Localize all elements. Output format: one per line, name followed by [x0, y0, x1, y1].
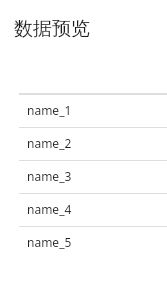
staticText: name_5	[27, 234, 72, 250]
staticText: name_3	[27, 168, 72, 184]
button[interactable]: name_1	[0, 94, 167, 127]
button[interactable]: name_5	[0, 226, 167, 259]
staticText: name_4	[27, 201, 72, 217]
button[interactable]: name_4	[0, 193, 167, 226]
staticText: name_1	[27, 102, 72, 118]
staticText: name_2	[27, 135, 72, 151]
button[interactable]: name_2	[0, 127, 167, 160]
button[interactable]: name_3	[0, 160, 167, 193]
staticText: 数据预览	[14, 17, 90, 41]
